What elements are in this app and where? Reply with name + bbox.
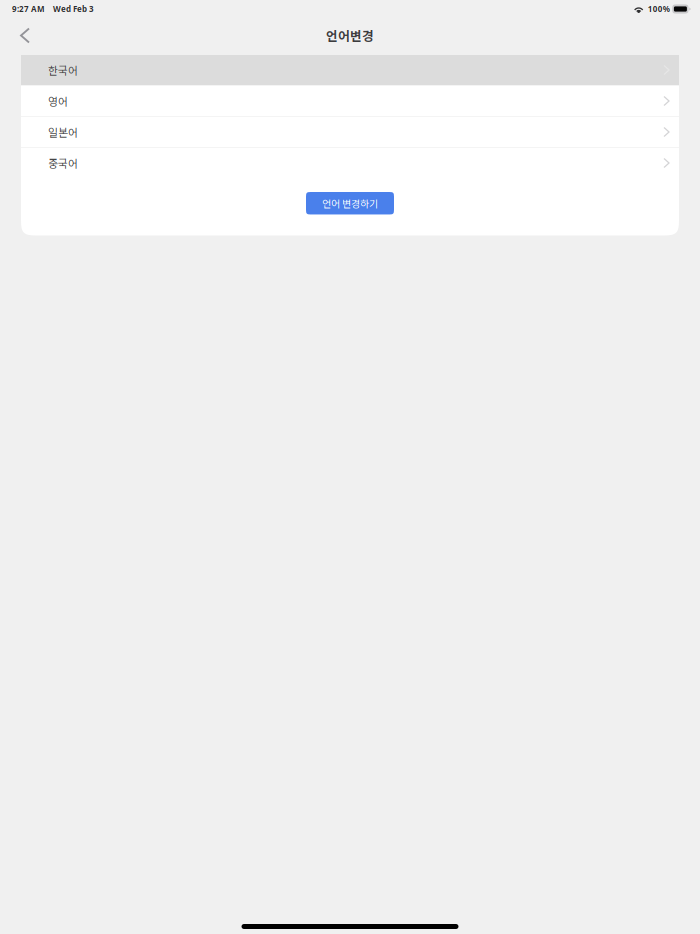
- staticText: 100%: [648, 4, 670, 14]
- staticText: 언어변경: [326, 26, 374, 45]
- button[interactable]: 언어 변경하기: [306, 192, 394, 214]
- staticText: 영어: [48, 93, 68, 109]
- staticText: 일본어: [48, 124, 78, 140]
- staticText: 언어 변경하기: [322, 196, 378, 210]
- button[interactable]: 한국어: [21, 55, 679, 85]
- staticText: Wed Feb 3: [53, 4, 94, 14]
- button[interactable]: 일본어: [21, 117, 679, 147]
- staticText: 한국어: [48, 62, 78, 78]
- button[interactable]: 영어: [21, 86, 679, 116]
- staticText: 중국어: [48, 155, 78, 171]
- staticText: 9:27 AM: [12, 4, 45, 14]
- button[interactable]: 중국어: [21, 148, 679, 178]
- button[interactable]: Back: [0, 20, 39, 50]
